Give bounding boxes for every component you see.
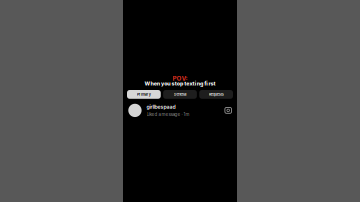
staticText: General xyxy=(173,92,186,97)
button[interactable]: General xyxy=(163,90,197,99)
staticText: Liked a message · 1m xyxy=(147,112,190,117)
staticText: girllbespaad xyxy=(147,104,176,110)
button[interactable]: girllbespaad xyxy=(123,102,225,118)
staticText: When you stop texting first xyxy=(144,80,215,87)
staticText: POV: xyxy=(172,75,187,82)
staticText: Requests xyxy=(209,92,224,97)
button[interactable]: Primary xyxy=(127,90,161,99)
staticText: Primary xyxy=(137,92,151,97)
button[interactable]: Requests xyxy=(199,90,233,99)
button[interactable]: Camera xyxy=(225,102,237,118)
